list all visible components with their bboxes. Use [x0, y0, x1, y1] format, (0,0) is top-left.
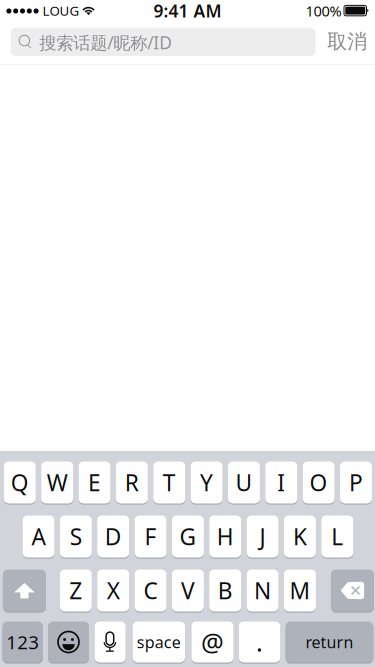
staticText: G — [179, 521, 196, 551]
button[interactable]: H — [209, 515, 241, 558]
button[interactable]: F — [134, 515, 166, 558]
staticText: 100% — [305, 1, 341, 20]
staticText: 搜索话题/昵称/ID — [39, 31, 172, 54]
staticText: 9:41 AM — [153, 0, 221, 22]
button[interactable]: Shift — [3, 569, 46, 612]
staticText: W — [47, 467, 68, 497]
staticText: U — [235, 467, 252, 497]
button[interactable]: P — [340, 461, 372, 504]
button[interactable]: Q — [4, 461, 36, 504]
button[interactable]: Delete — [331, 569, 374, 612]
button[interactable]: . — [239, 621, 280, 663]
staticText: K — [293, 521, 307, 551]
staticText: L — [331, 521, 343, 551]
button[interactable]: I — [265, 461, 297, 504]
staticText: LOUG — [42, 2, 79, 19]
button[interactable]: O — [303, 461, 335, 504]
button[interactable]: Search — [11, 28, 315, 56]
button[interactable]: U — [228, 461, 260, 504]
button[interactable]: C — [134, 569, 166, 612]
button[interactable]: V — [172, 569, 204, 612]
staticText: J — [260, 521, 266, 551]
button[interactable]: T — [153, 461, 185, 504]
button[interactable]: M — [284, 569, 316, 612]
button[interactable]: J — [247, 515, 279, 558]
button[interactable]: Dictation — [95, 621, 126, 663]
button[interactable]: S — [60, 515, 92, 558]
button[interactable]: A — [22, 515, 54, 558]
button[interactable]: D — [97, 515, 129, 558]
staticText: B — [218, 575, 233, 605]
staticText: P — [349, 467, 363, 497]
staticText: . — [256, 625, 263, 659]
staticText: 取消 — [327, 29, 367, 54]
staticText: return — [305, 631, 353, 653]
staticText: T — [163, 467, 176, 497]
staticText: Y — [200, 467, 213, 497]
staticText: R — [125, 467, 139, 497]
staticText: S — [70, 521, 82, 551]
button[interactable]: 取消 — [322, 25, 372, 57]
staticText: X — [107, 575, 120, 605]
button[interactable]: return — [286, 621, 373, 663]
button[interactable]: E — [78, 461, 110, 504]
button[interactable]: Y — [191, 461, 223, 504]
staticText: C — [143, 575, 157, 605]
button[interactable]: @ — [191, 621, 234, 663]
staticText: V — [181, 575, 195, 605]
button[interactable]: X — [97, 569, 129, 612]
button[interactable]: 123 — [2, 621, 43, 663]
staticText: space — [137, 631, 181, 653]
staticText: I — [277, 467, 285, 497]
staticText: 123 — [6, 630, 39, 654]
button[interactable]: space — [133, 621, 185, 663]
staticText: A — [31, 521, 45, 551]
staticText: M — [289, 575, 310, 605]
button[interactable]: G — [172, 515, 204, 558]
button[interactable]: B — [209, 569, 241, 612]
button[interactable]: N — [247, 569, 279, 612]
staticText: O — [310, 467, 328, 497]
staticText: Z — [69, 575, 82, 605]
button[interactable]: R — [116, 461, 148, 504]
button[interactable]: K — [284, 515, 316, 558]
staticText: N — [254, 575, 271, 605]
staticText: E — [88, 467, 101, 497]
staticText: F — [144, 521, 156, 551]
button[interactable]: Emoji — [48, 621, 89, 663]
button[interactable]: L — [321, 515, 353, 558]
button[interactable]: W — [41, 461, 73, 504]
staticText: Q — [11, 467, 29, 497]
button[interactable]: Z — [60, 569, 92, 612]
staticText: @ — [201, 625, 224, 659]
staticText: H — [217, 521, 234, 551]
staticText: D — [105, 521, 122, 551]
